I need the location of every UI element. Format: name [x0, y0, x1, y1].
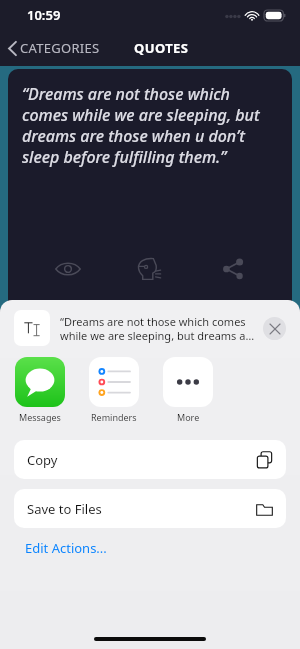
- button[interactable]: CATEGORIES: [0, 35, 110, 61]
- staticText: CATEGORIES: [20, 39, 100, 57]
- button[interactable]: Copy: [14, 440, 286, 479]
- staticText: “Dreams are not those which comes while …: [22, 83, 278, 168]
- button[interactable]: Reminders: [88, 357, 140, 423]
- button[interactable]: View: [45, 246, 91, 292]
- staticText: QUOTES: [134, 39, 189, 57]
- button[interactable]: Edit Actions...: [25, 539, 107, 557]
- button[interactable]: More: [162, 357, 214, 423]
- staticText: More: [177, 411, 200, 423]
- button[interactable]: Share: [210, 246, 256, 292]
- button[interactable]: Messages: [14, 357, 66, 423]
- staticText: Reminders: [91, 411, 137, 423]
- staticText: “Dreams are not those which comes while …: [60, 314, 255, 343]
- staticText: Save to Files: [27, 500, 102, 518]
- staticText: Copy: [27, 451, 58, 469]
- button[interactable]: Close: [263, 317, 286, 340]
- staticText: 10:59: [27, 6, 61, 24]
- button[interactable]: Save to Files: [14, 489, 286, 528]
- staticText: Messages: [19, 411, 61, 423]
- button[interactable]: Speak: [127, 246, 173, 292]
